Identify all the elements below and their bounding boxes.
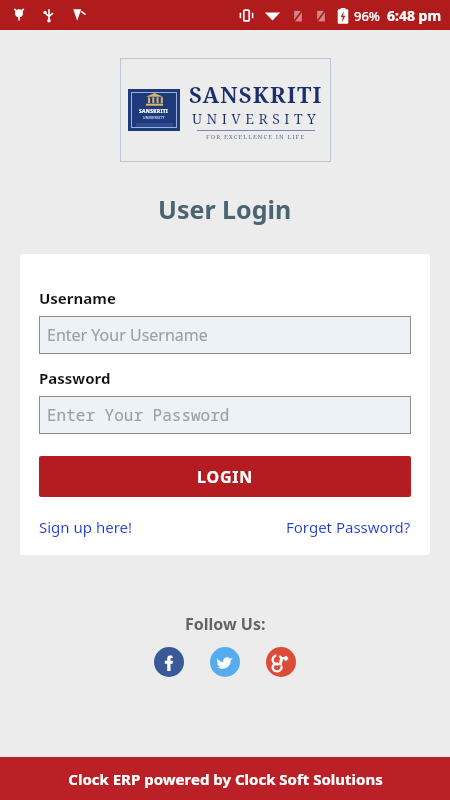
staticText: LOGIN: [197, 466, 254, 488]
staticText: Follow Us:: [185, 613, 266, 635]
staticText: UNIVERSITY: [192, 109, 321, 128]
staticText: Clock ERP powered by Clock Soft Solution…: [68, 769, 383, 789]
staticText: 96%: [354, 7, 380, 25]
staticText: Enter Your Password: [47, 404, 230, 426]
staticText: Password: [39, 368, 111, 388]
button[interactable]: Google Plus: [266, 647, 296, 677]
button[interactable]: Twitter: [210, 647, 240, 677]
staticText: SANSKRITI: [139, 108, 169, 115]
staticText: 6:48 pm: [387, 6, 442, 25]
staticText: Forget Password?: [286, 517, 411, 537]
staticText: Sign up here!: [39, 517, 133, 537]
button[interactable]: Forget Password?: [286, 517, 411, 537]
staticText: User Login: [158, 192, 292, 226]
button[interactable]: LOGIN: [39, 456, 411, 497]
staticText: UNIVERSITY: [143, 115, 165, 120]
button[interactable]: Facebook: [154, 647, 184, 677]
button[interactable]: Enter Your Username: [39, 316, 411, 354]
button[interactable]: Enter Your Password: [39, 396, 411, 434]
staticText: SANSKRITI: [189, 79, 323, 109]
staticText: FOR EXCELLENCE IN LIFE: [206, 133, 306, 141]
staticText: Enter Your Username: [47, 324, 208, 346]
button[interactable]: Sign up here!: [39, 517, 133, 537]
staticText: Username: [39, 288, 116, 308]
